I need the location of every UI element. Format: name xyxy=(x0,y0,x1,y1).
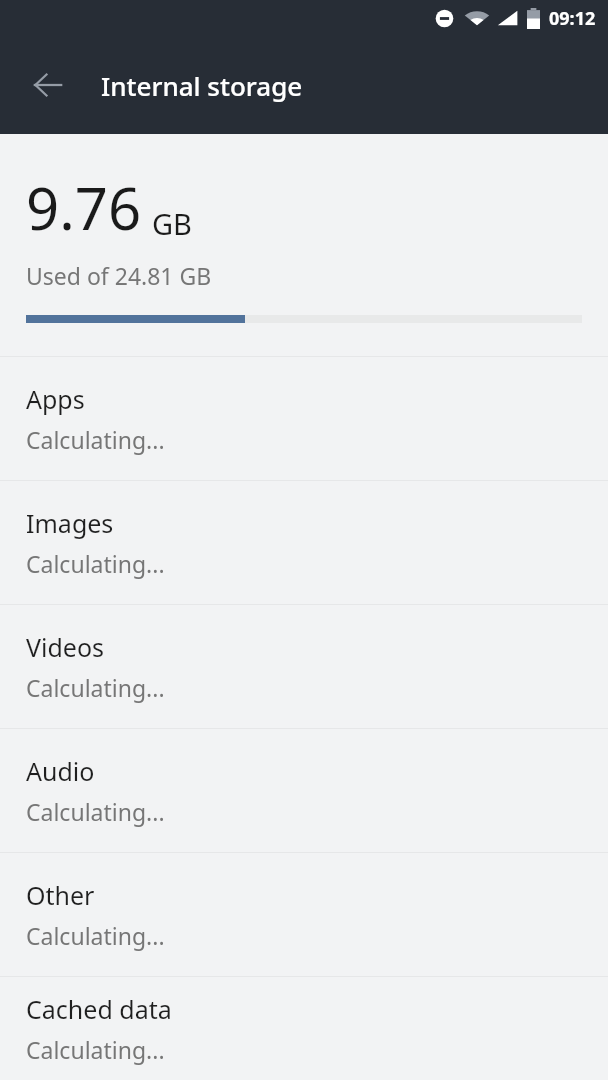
button[interactable]: Cached data xyxy=(0,977,608,1080)
staticText: Other xyxy=(26,878,95,912)
staticText: Audio xyxy=(26,754,95,788)
staticText: 09:12 xyxy=(549,6,596,31)
staticText: Videos xyxy=(26,630,105,664)
button[interactable]: Videos xyxy=(0,605,608,728)
staticText: Calculating... xyxy=(26,796,165,827)
button[interactable]: Back xyxy=(24,61,72,109)
button[interactable]: Audio xyxy=(0,729,608,852)
staticText: Cached data xyxy=(26,992,172,1026)
staticText: GB xyxy=(152,204,192,243)
staticText: Internal storage xyxy=(101,68,303,103)
staticText: Calculating... xyxy=(26,920,165,951)
staticText: Used of 24.81 GB xyxy=(26,260,212,291)
button[interactable]: Apps xyxy=(0,357,608,480)
button[interactable]: Images xyxy=(0,481,608,604)
staticText: Apps xyxy=(26,382,85,416)
staticText: Calculating... xyxy=(26,1034,165,1065)
staticText: Calculating... xyxy=(26,424,165,455)
staticText: Calculating... xyxy=(26,548,165,579)
staticText: Calculating... xyxy=(26,672,165,703)
button[interactable]: Other xyxy=(0,853,608,976)
staticText: 9.76 xyxy=(26,168,142,247)
staticText: Images xyxy=(26,506,114,540)
